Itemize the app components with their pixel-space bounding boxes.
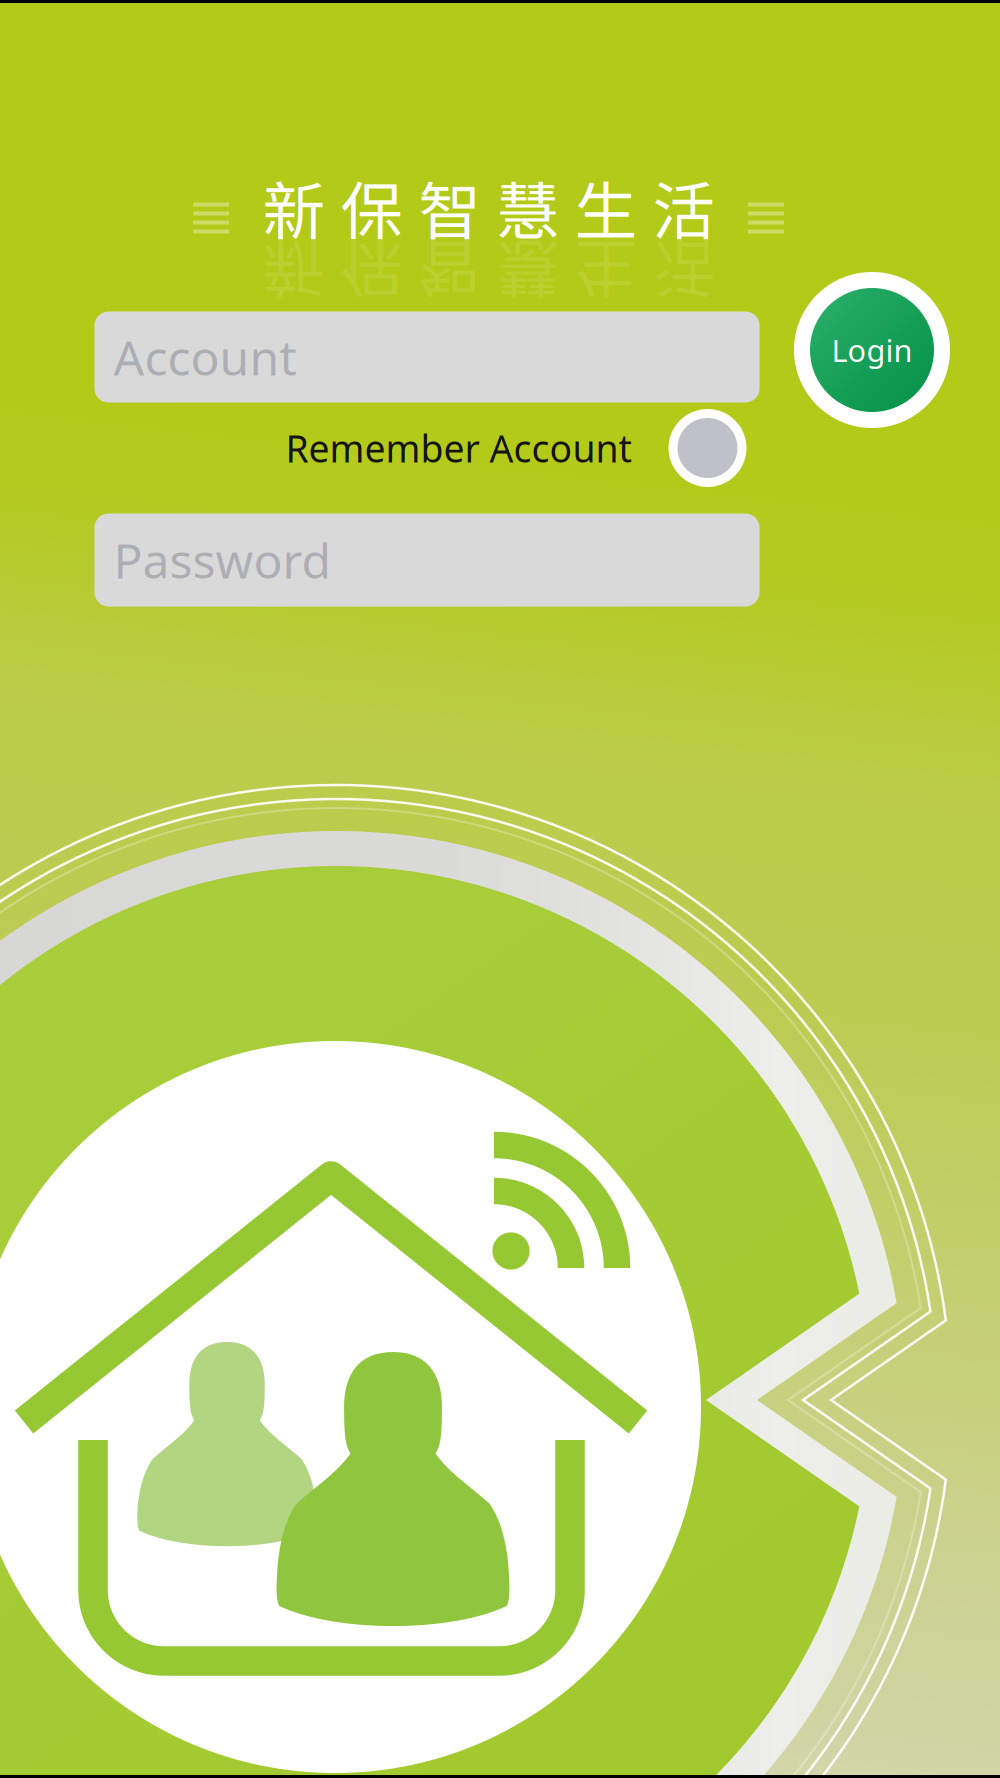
button[interactable]: Login	[794, 272, 950, 428]
button[interactable]: Remember Account	[285, 409, 746, 487]
staticText: Remember Account	[285, 423, 631, 473]
staticText: 新保智慧生活	[262, 162, 715, 252]
staticText: Password	[113, 528, 331, 592]
button[interactable]: Password	[94, 513, 759, 606]
button[interactable]: Account	[94, 311, 759, 402]
staticText: Account	[113, 325, 296, 389]
staticText: Login	[831, 330, 912, 370]
staticText: 新保智慧生活	[262, 227, 715, 317]
